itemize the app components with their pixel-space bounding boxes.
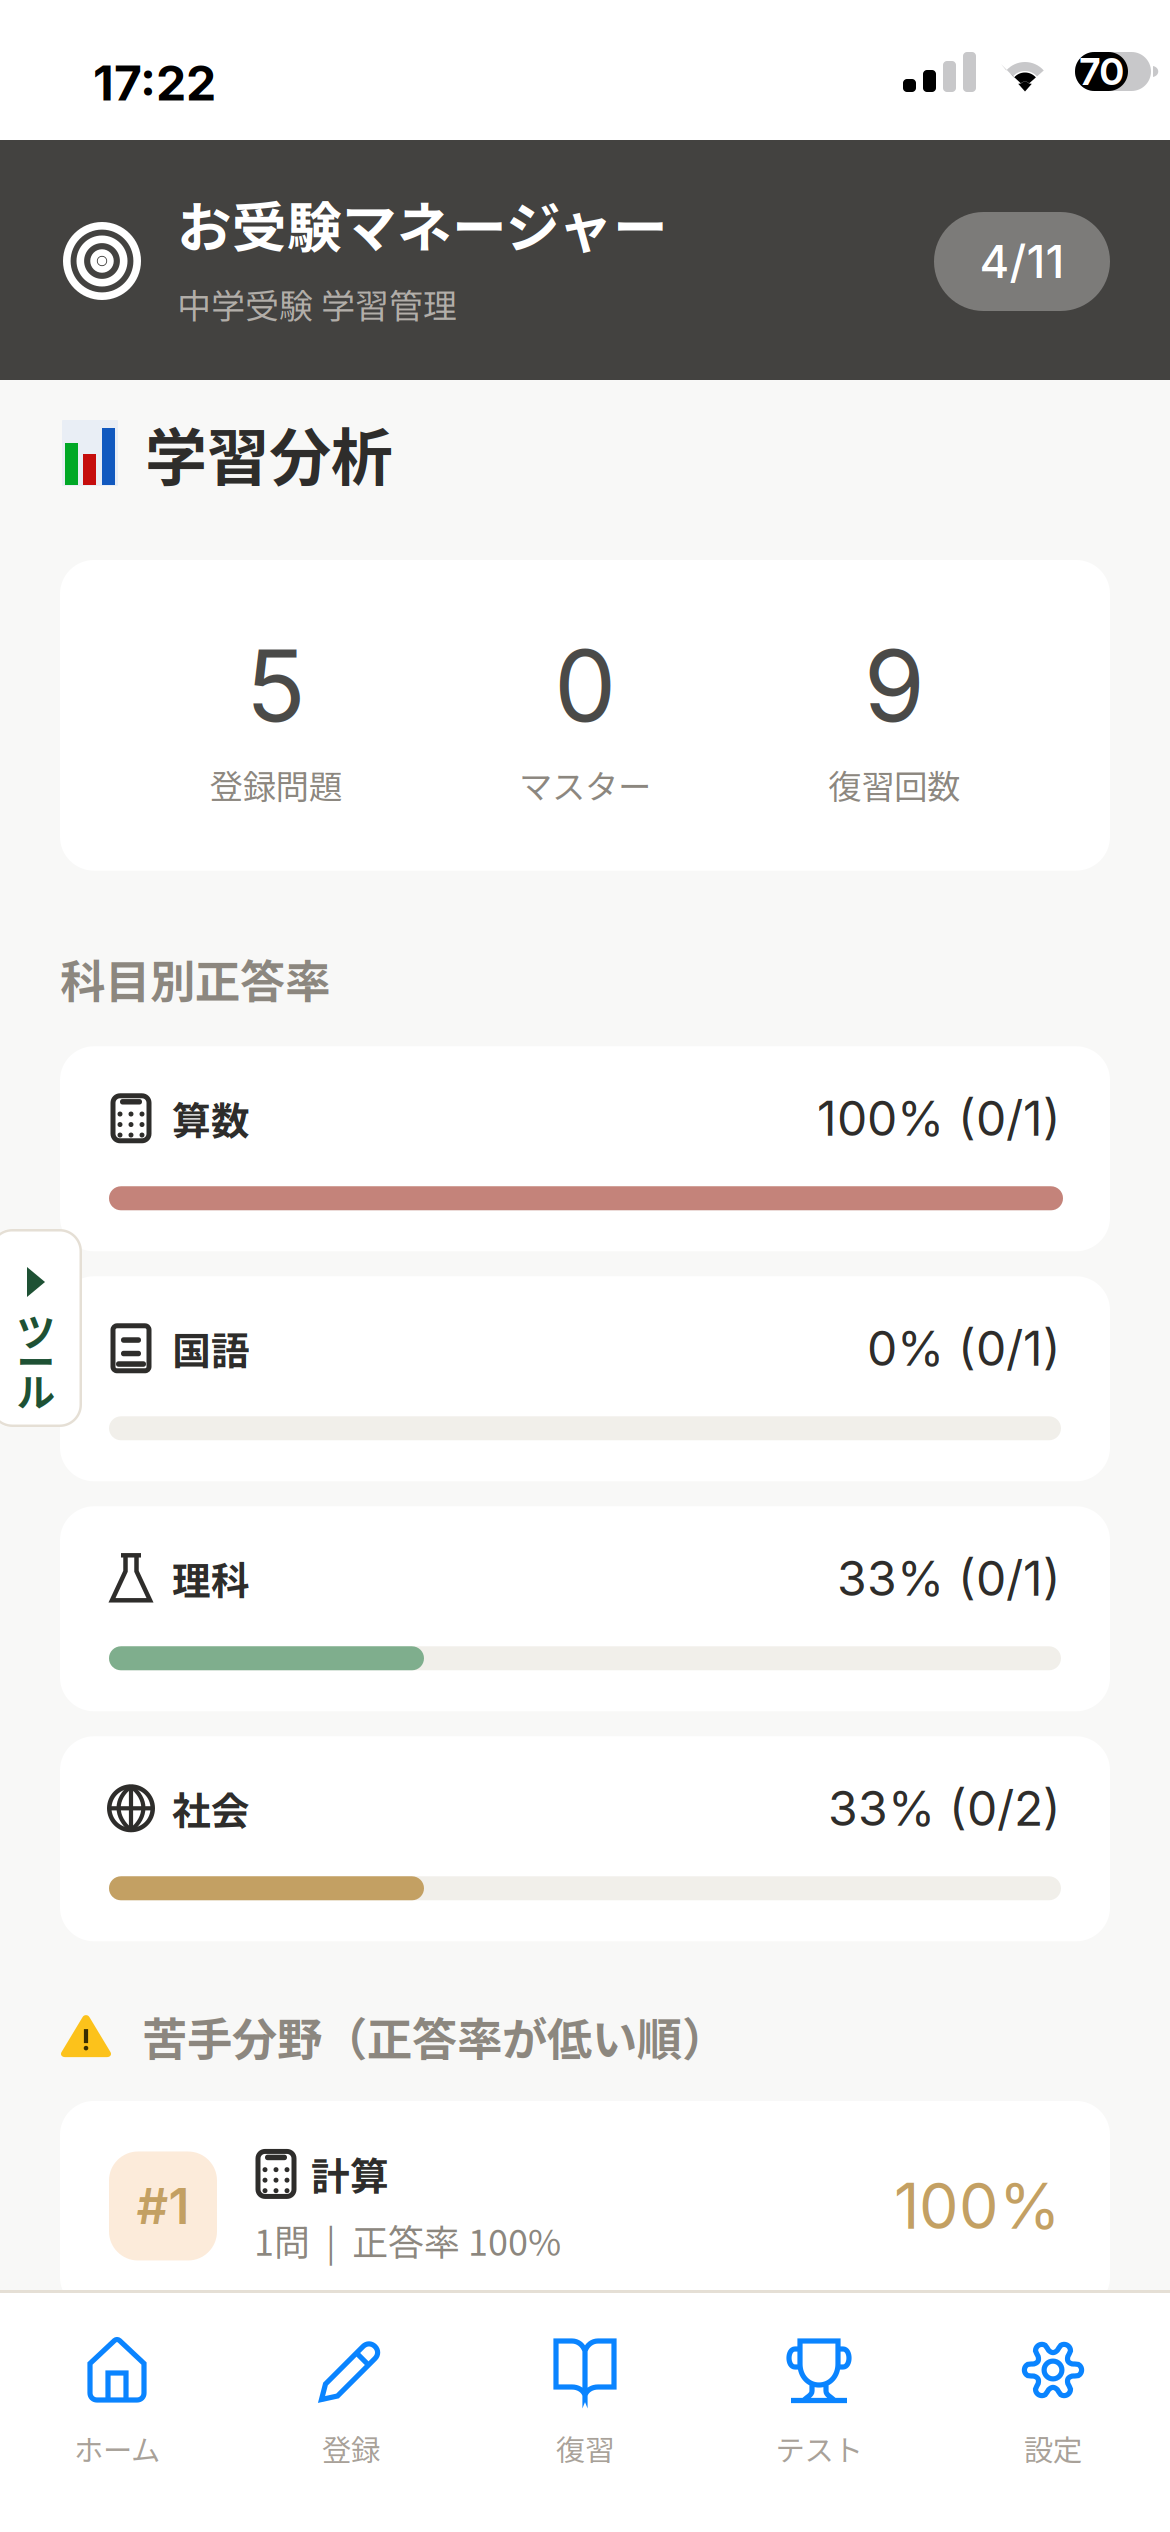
- staticText: ー: [16, 1332, 55, 1388]
- staticText: 中学受験 学習管理: [177, 279, 457, 328]
- staticText: ル: [16, 1362, 55, 1418]
- button[interactable]: ツール: [0, 1229, 82, 1427]
- staticText: 100%: [894, 2168, 1061, 2244]
- staticText: 0% (0/1): [867, 1319, 1061, 1377]
- staticText: 復習: [556, 2427, 614, 2469]
- staticText: #1: [136, 2176, 189, 2236]
- button[interactable]: #1: [60, 2101, 1110, 2311]
- button[interactable]: 国語: [60, 1276, 1110, 1481]
- staticText: 学習分析: [145, 408, 393, 498]
- button[interactable]: 登録: [234, 2293, 468, 2532]
- staticText: 70: [1079, 49, 1123, 94]
- staticText: 9: [864, 626, 925, 745]
- button[interactable]: テスト: [702, 2293, 936, 2532]
- button[interactable]: 社会: [60, 1736, 1110, 1941]
- staticText: 理科: [172, 1550, 250, 1606]
- staticText: お受験マネージャー: [177, 184, 668, 263]
- staticText: 算数: [172, 1090, 250, 1146]
- staticText: 設定: [1024, 2427, 1082, 2469]
- staticText: 17:22: [93, 54, 216, 112]
- staticText: 5: [246, 626, 306, 745]
- button[interactable]: 復習: [468, 2293, 702, 2532]
- staticText: 100% (0/1): [817, 1089, 1061, 1147]
- staticText: 33% (0/1): [837, 1549, 1061, 1607]
- button[interactable]: 設定: [936, 2293, 1170, 2532]
- staticText: 国語: [172, 1320, 250, 1376]
- button[interactable]: 算数: [60, 1046, 1110, 1251]
- staticText: 登録問題: [210, 760, 342, 809]
- staticText: 4/11: [979, 234, 1064, 289]
- staticText: 復習回数: [828, 760, 960, 809]
- staticText: ツ: [16, 1302, 55, 1358]
- button[interactable]: ホーム: [0, 2293, 234, 2532]
- button[interactable]: 理科: [60, 1506, 1110, 1711]
- staticText: 登録: [322, 2427, 380, 2469]
- button[interactable]: 4/11: [934, 212, 1110, 311]
- staticText: マスター: [519, 760, 651, 809]
- staticText: 科目別正答率: [60, 946, 330, 1011]
- staticText: 苦手分野（正答率が低い順）: [142, 2003, 727, 2069]
- staticText: 1問 | 正答率 100%: [254, 2214, 561, 2266]
- staticText: ホーム: [74, 2427, 160, 2469]
- staticText: 社会: [172, 1780, 250, 1836]
- staticText: 計算: [311, 2146, 389, 2202]
- staticText: テスト: [775, 2427, 862, 2469]
- staticText: 33% (0/2): [828, 1779, 1061, 1837]
- staticText: 0: [554, 626, 616, 745]
